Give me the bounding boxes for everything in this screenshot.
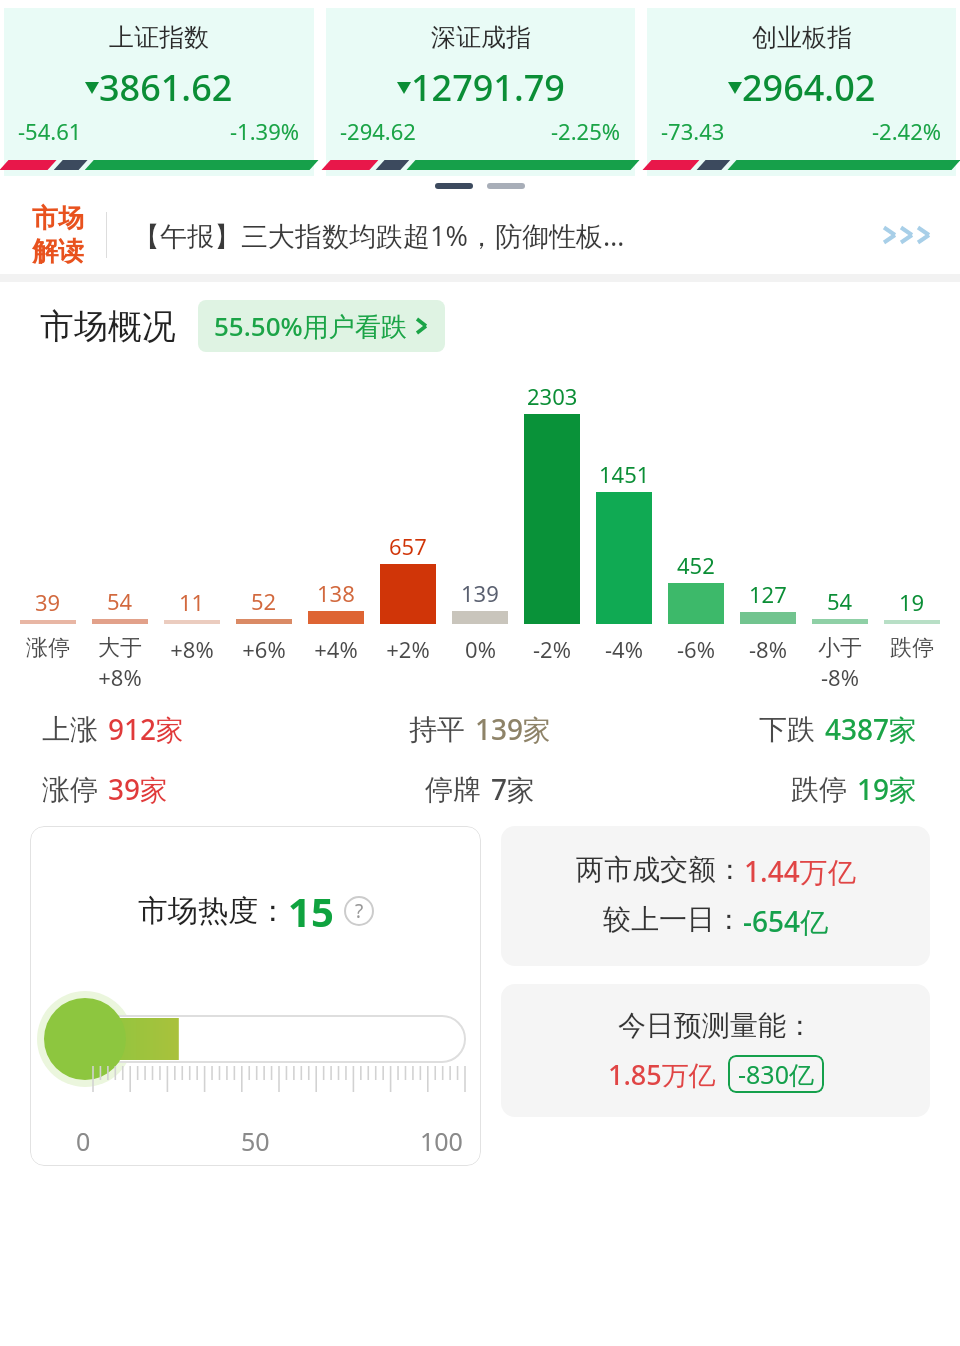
staticText: 127 (749, 579, 787, 609)
other: More news (880, 220, 936, 250)
staticText: +4% (314, 634, 358, 664)
staticText: 54 (827, 586, 853, 616)
staticText: 两市成交额： (576, 852, 744, 887)
staticText: 创业板指 (752, 22, 852, 53)
button[interactable]: 127 (732, 374, 804, 696)
staticText: ? (355, 898, 364, 924)
button[interactable]: 138 (300, 374, 372, 696)
staticText: 7家 (491, 770, 536, 808)
staticText: 2303 (527, 381, 578, 411)
button[interactable]: 深证成指 (326, 8, 635, 176)
staticText: 持平 (409, 712, 465, 747)
staticText: -830亿 (738, 1057, 814, 1091)
staticText: 今日预测量能： (618, 1008, 814, 1043)
button[interactable]: 139 (444, 374, 516, 696)
staticText: -73.43 (661, 116, 725, 146)
staticText: 19家 (857, 770, 918, 808)
staticText: 54 (107, 586, 133, 616)
staticText: 52 (251, 586, 277, 616)
staticText: +8% (98, 662, 142, 692)
staticText: 下跌 (759, 712, 815, 747)
button[interactable] (435, 183, 473, 189)
staticText: -54.61 (18, 116, 82, 146)
staticText: 市场 (32, 202, 84, 235)
button[interactable]: 657 (372, 374, 444, 696)
staticText: 4387家 (825, 710, 918, 748)
staticText: 0 (76, 1124, 91, 1158)
staticText: 55.50%用户看跌 (214, 308, 407, 344)
staticText: 11 (179, 587, 205, 617)
staticText: 657 (389, 531, 427, 561)
staticText: 2964.02 (742, 63, 876, 112)
staticText: 涨停 (26, 634, 70, 662)
staticText: 上涨 (42, 712, 98, 747)
button[interactable]: 市场 (0, 196, 960, 274)
staticText: 50 (241, 1124, 270, 1158)
staticText: -6% (677, 634, 715, 664)
staticText: +6% (242, 634, 286, 664)
staticText: -2.42% (872, 116, 942, 146)
button[interactable]: 11 (156, 374, 228, 696)
staticText: 小于 (818, 634, 862, 662)
button[interactable]: 1451 (588, 374, 660, 696)
staticText: -1.39% (230, 116, 300, 146)
staticText: 15 (288, 884, 334, 938)
staticText: -8% (749, 634, 787, 664)
button[interactable]: 持平 (334, 710, 626, 748)
staticText: 139家 (475, 710, 552, 748)
button[interactable]: Help (344, 896, 374, 926)
staticText: +2% (386, 634, 430, 664)
staticText: 1.44万亿 (744, 852, 856, 890)
staticText: 3861.62 (99, 63, 233, 112)
staticText: 452 (677, 550, 715, 580)
staticText: -294.62 (340, 116, 416, 146)
button[interactable]: 19 (876, 374, 948, 696)
staticText: 跌停 (791, 772, 847, 807)
button[interactable]: 452 (660, 374, 732, 696)
button[interactable]: 停牌 (334, 770, 626, 808)
staticText: 解读 (32, 235, 84, 268)
button[interactable]: 上涨 (42, 710, 334, 748)
button[interactable]: 52 (228, 374, 300, 696)
button[interactable]: 今日预测量能： (501, 984, 930, 1117)
staticText: 19 (899, 587, 925, 617)
staticText: 12791.79 (411, 63, 565, 112)
staticText: 139 (461, 578, 499, 608)
staticText: -4% (605, 634, 643, 664)
button[interactable]: 市场热度： (30, 826, 481, 1166)
button[interactable]: 55.50%用户看跌 (198, 300, 445, 352)
staticText: 39 (35, 587, 61, 617)
staticText: -8% (821, 662, 859, 692)
button[interactable]: 2303 (516, 374, 588, 696)
button[interactable]: 上证指数 (4, 8, 314, 176)
button[interactable]: 39 (12, 374, 84, 696)
staticText: 39家 (108, 770, 169, 808)
staticText: 市场概况 (40, 305, 176, 348)
staticText: 较上一日： (603, 902, 743, 937)
staticText: 【午报】三大指数均跌超1%，防御性板… (133, 217, 625, 254)
staticText: 上证指数 (109, 22, 209, 53)
button[interactable]: 涨停 (42, 770, 334, 808)
staticText: 跌停 (890, 634, 934, 662)
staticText: +8% (170, 634, 214, 664)
staticText: 涨停 (42, 772, 98, 807)
button[interactable]: 下跌 (626, 710, 918, 748)
button[interactable]: 54 (804, 374, 876, 696)
staticText: -2.25% (551, 116, 621, 146)
staticText: 1451 (599, 459, 650, 489)
staticText: 100 (420, 1124, 463, 1158)
staticText: 市场热度： (138, 892, 288, 930)
button[interactable]: 54 (84, 374, 156, 696)
staticText: 0% (465, 634, 496, 664)
button[interactable]: 创业板指 (647, 8, 956, 176)
staticText: 停牌 (425, 772, 481, 807)
staticText: 138 (317, 578, 355, 608)
staticText: 大于 (98, 634, 142, 662)
button[interactable]: 两市成交额： (501, 826, 930, 966)
button[interactable] (487, 183, 525, 189)
button[interactable]: 跌停 (626, 770, 918, 808)
staticText: 1.85万亿 (608, 1056, 716, 1093)
staticText: -2% (533, 634, 571, 664)
staticText: -654亿 (743, 902, 829, 940)
staticText: 912家 (108, 710, 185, 748)
